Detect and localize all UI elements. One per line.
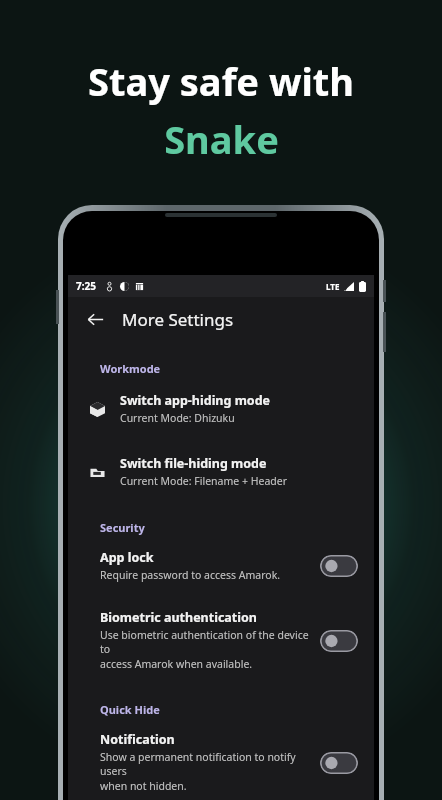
staticText: Current Mode: Dhizuku [120,411,235,425]
staticText: Show a permanent notification to notify … [100,750,312,778]
staticText: Switch file-hiding mode [120,455,267,472]
staticText: 7:25 [76,279,96,293]
staticText: Quick Hide [100,702,160,717]
button[interactable]: Toggle [320,752,358,774]
button[interactable]: App lock [68,545,374,587]
staticText: Biometric authentication [100,609,257,626]
button[interactable]: Toggle [320,630,358,652]
button[interactable]: Notification [68,727,374,798]
button[interactable]: Switch file-hiding mode [68,449,374,494]
staticText: More Settings [122,308,234,331]
staticText: Require password to access Amarok. [100,568,281,582]
staticText: Snake [164,113,279,165]
staticText: Use biometric authentication of the devi… [100,628,312,656]
staticText: Workmode [100,361,161,376]
staticText: Current Mode: Filename + Header [120,474,288,488]
staticText: LTE [326,281,340,292]
button[interactable]: Back [78,302,112,336]
button[interactable]: Biometric authentication [68,605,374,676]
button[interactable]: Switch app-hiding mode [68,386,374,431]
staticText: access Amarok when available. [100,657,253,671]
staticText: Security [100,520,145,535]
staticText: Switch app-hiding mode [120,392,271,409]
button[interactable]: Toggle [320,555,358,577]
staticText: Notification [100,731,175,748]
staticText: Stay safe with [88,55,354,107]
staticText: App lock [100,549,154,566]
staticText: when not hidden. [100,779,187,793]
